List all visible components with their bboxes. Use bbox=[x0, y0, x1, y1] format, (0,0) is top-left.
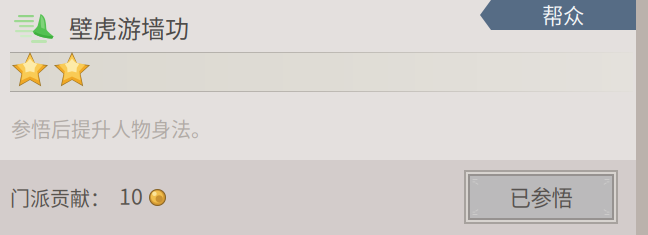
staticText: 已参悟 bbox=[509, 181, 572, 212]
staticText: 门派贡献： bbox=[10, 183, 110, 212]
button[interactable]: 已参悟 bbox=[464, 170, 618, 224]
staticText: 帮众 bbox=[542, 0, 584, 30]
staticText: 壁虎游墙功 bbox=[69, 10, 189, 45]
staticText: 参悟后提升人物身法。 bbox=[11, 114, 211, 143]
staticText: 10 bbox=[119, 180, 143, 211]
